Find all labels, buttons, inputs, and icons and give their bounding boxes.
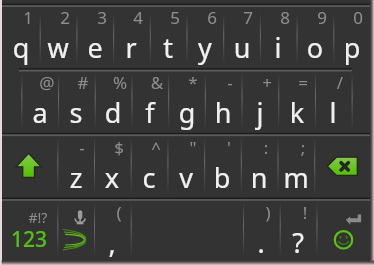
staticText: - [54,136,110,159]
staticText: ' [201,136,257,159]
staticText: $ [91,136,147,159]
staticText: * [165,71,221,94]
staticText: v [158,159,214,196]
staticText: n [231,159,287,196]
button[interactable]: c [131,134,168,199]
staticText: g [159,94,215,131]
button[interactable]: o [297,10,334,69]
staticText: 9 [294,6,350,29]
staticText: #!? [10,208,66,227]
staticText: 123 [1,225,57,254]
staticText: + [239,71,295,94]
staticText: z [48,159,104,196]
staticText: 4 [110,6,166,29]
staticText: l [305,94,361,131]
staticText: # [55,71,111,94]
button[interactable]: d [95,69,132,134]
button[interactable]: Period [243,199,280,261]
button[interactable]: s [58,69,95,134]
staticText: j [232,94,288,131]
button[interactable]: g [168,69,205,134]
staticText: o [287,29,343,66]
staticText: / [312,71,368,94]
staticText: t [140,29,196,66]
button[interactable]: p [333,10,370,69]
button[interactable]: i [260,10,297,69]
staticText: ; [275,136,331,159]
staticText: 1 [0,6,56,29]
button[interactable]: n [241,134,278,199]
button[interactable]: q [3,10,40,69]
button[interactable]: j [242,69,279,134]
staticText: @ [19,71,75,94]
button[interactable]: r [113,10,150,69]
staticText: e [67,29,123,66]
staticText: x [84,159,140,196]
button[interactable]: m [278,134,315,199]
staticText: , [84,224,140,261]
staticText: - [202,71,258,94]
staticText: 0 [330,6,374,29]
button[interactable]: h [205,69,242,134]
staticText: ) [240,201,296,224]
staticText: . [233,224,289,261]
button[interactable]: Enter [316,199,370,261]
staticText: 2 [37,6,93,29]
button[interactable]: Question mark [280,199,317,261]
staticText: c [121,159,177,196]
staticText: d [85,94,141,131]
staticText: f [122,94,178,131]
button[interactable]: k [278,69,315,134]
staticText: % [92,71,148,94]
staticText: q [0,29,49,66]
staticText: i [250,29,306,66]
staticText: w [30,29,86,66]
staticText: 3 [74,6,130,29]
staticText: p [324,29,374,66]
button[interactable]: l [315,69,352,134]
staticText: ^ [128,136,184,159]
staticText: 7 [220,6,276,29]
staticText: m [268,159,324,196]
staticText: : [238,136,294,159]
staticText: k [269,94,325,131]
button[interactable]: y [187,10,224,69]
button[interactable]: v [167,134,204,199]
button[interactable]: Space [131,199,243,261]
button[interactable]: z [57,134,94,199]
button[interactable]: Voice input [57,199,94,261]
staticText: & [129,71,185,94]
button[interactable]: u [223,10,260,69]
button[interactable]: x [94,134,131,199]
staticText: y [177,29,233,66]
button[interactable]: Backspace [314,134,370,199]
button[interactable]: e [76,10,113,69]
staticText: r [103,29,159,66]
staticText: b [194,159,250,196]
staticText: 6 [184,6,240,29]
button[interactable]: w [40,10,77,69]
button[interactable]: f [131,69,168,134]
staticText: u [214,29,270,66]
staticText: = [275,71,331,94]
staticText: ( [91,201,147,224]
button[interactable]: a [21,69,58,134]
button[interactable]: Comma [94,199,131,261]
button[interactable]: Numbers and symbols [2,199,57,261]
staticText: " [165,136,221,159]
staticText: ? [270,224,326,261]
staticText: h [195,94,251,131]
staticText: 8 [257,6,313,29]
button[interactable]: t [150,10,187,69]
button[interactable]: b [204,134,241,199]
staticText: ! [277,201,333,224]
staticText: 5 [147,6,203,29]
button[interactable]: Shift [2,134,57,199]
staticText: a [12,94,68,131]
staticText: s [48,94,104,131]
